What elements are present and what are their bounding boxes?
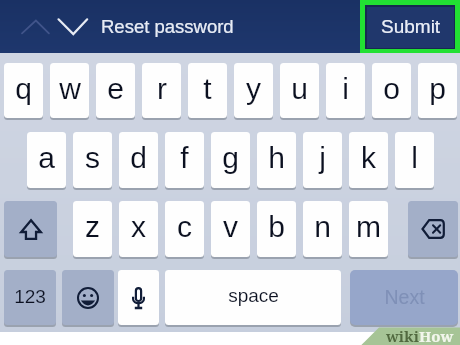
button[interactable]: z [73, 201, 112, 257]
staticText: Reset password [101, 16, 234, 37]
staticText: o [383, 72, 400, 106]
button[interactable]: Next field [54, 14, 92, 40]
button[interactable]: Backspace [408, 201, 458, 257]
button[interactable]: Reset password [101, 16, 234, 37]
button[interactable]: f [165, 132, 204, 188]
staticText: Submit [381, 16, 441, 37]
staticText: v [223, 210, 238, 244]
staticText: j [319, 141, 326, 175]
button[interactable]: m [349, 201, 388, 257]
staticText: u [291, 72, 308, 106]
staticText: q [15, 72, 32, 106]
button[interactable]: Dictation [118, 270, 159, 325]
staticText: x [131, 210, 146, 244]
button[interactable]: g [211, 132, 250, 188]
button[interactable]: l [395, 132, 434, 188]
staticText: z [85, 210, 100, 244]
button[interactable]: w [50, 63, 89, 118]
button[interactable]: i [326, 63, 365, 118]
button[interactable]: x [119, 201, 158, 257]
button[interactable]: n [303, 201, 342, 257]
button[interactable]: Shift [4, 201, 57, 257]
button[interactable]: s [73, 132, 112, 188]
button[interactable]: c [165, 201, 204, 257]
button[interactable]: Emoji keyboard [62, 270, 114, 325]
staticText: h [268, 141, 285, 175]
button[interactable]: v [211, 201, 250, 257]
staticText: 123 [14, 286, 46, 307]
staticText: s [85, 141, 100, 175]
staticText: i [342, 72, 349, 106]
staticText: e [107, 72, 124, 106]
staticText: y [246, 72, 261, 106]
staticText: n [314, 210, 331, 244]
button[interactable]: o [372, 63, 411, 118]
button[interactable]: h [257, 132, 296, 188]
button[interactable]: k [349, 132, 388, 188]
button[interactable]: Previous field [18, 14, 54, 40]
staticText: a [38, 141, 55, 175]
staticText: t [203, 72, 212, 106]
button[interactable]: d [119, 132, 158, 188]
staticText: Next [384, 286, 425, 308]
button[interactable]: r [142, 63, 181, 118]
staticText: c [177, 210, 192, 244]
button[interactable]: space [165, 270, 341, 325]
button[interactable]: Submit [360, 0, 460, 53]
staticText: p [429, 72, 446, 106]
staticText: space [228, 285, 279, 306]
button[interactable]: j [303, 132, 342, 188]
staticText: How [419, 326, 454, 345]
staticText: f [180, 141, 189, 175]
staticText: wiki [386, 326, 419, 345]
staticText: g [222, 141, 239, 175]
staticText: m [356, 210, 381, 244]
button[interactable]: p [418, 63, 457, 118]
button[interactable]: Next [350, 270, 458, 325]
button[interactable]: e [96, 63, 135, 118]
button[interactable]: y [234, 63, 273, 118]
staticText: k [361, 141, 376, 175]
staticText: d [130, 141, 147, 175]
button[interactable]: b [257, 201, 296, 257]
button[interactable]: t [188, 63, 227, 118]
button[interactable]: q [4, 63, 43, 118]
button[interactable]: a [27, 132, 66, 188]
staticText: l [411, 141, 418, 175]
button[interactable]: 123 [4, 270, 56, 325]
button[interactable]: u [280, 63, 319, 118]
staticText: w [59, 72, 81, 106]
staticText: r [157, 72, 167, 106]
staticText: b [268, 210, 285, 244]
